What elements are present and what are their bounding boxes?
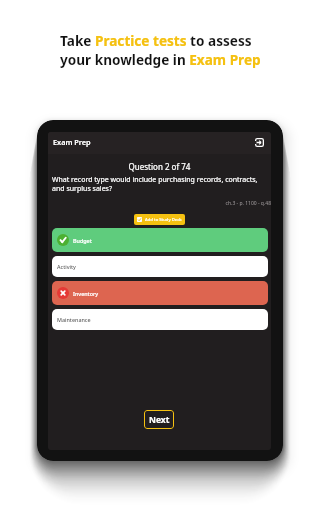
staticText: your knowledge in Exam Prep: [60, 50, 261, 69]
staticText: Question 2 of 74: [48, 161, 271, 172]
staticText: Take Practice tests to assess: [60, 31, 252, 50]
button[interactable]: Exam Prep: [48, 132, 271, 154]
staticText: Inventory: [73, 290, 99, 297]
button[interactable]: Next: [144, 410, 174, 429]
staticText: Activity: [57, 263, 76, 270]
staticText: Maintenance: [57, 316, 91, 323]
button[interactable]: Inventory: [52, 281, 268, 305]
button[interactable]: Maintenance: [52, 309, 268, 330]
staticText: Exam Prep: [53, 137, 91, 147]
staticText: ch.3 - p. 1100 - q.48: [52, 200, 271, 207]
button[interactable]: Activity: [52, 256, 268, 277]
staticText: Next: [149, 414, 170, 426]
button[interactable]: Add to Study Deck: [134, 214, 185, 225]
button[interactable]: Budget: [52, 228, 268, 252]
staticText: Add to Study Deck: [145, 217, 182, 223]
button[interactable]: Exit test: [251, 134, 267, 150]
staticText: Budget: [73, 237, 92, 244]
staticText: What record type would include purchasin…: [52, 175, 267, 193]
